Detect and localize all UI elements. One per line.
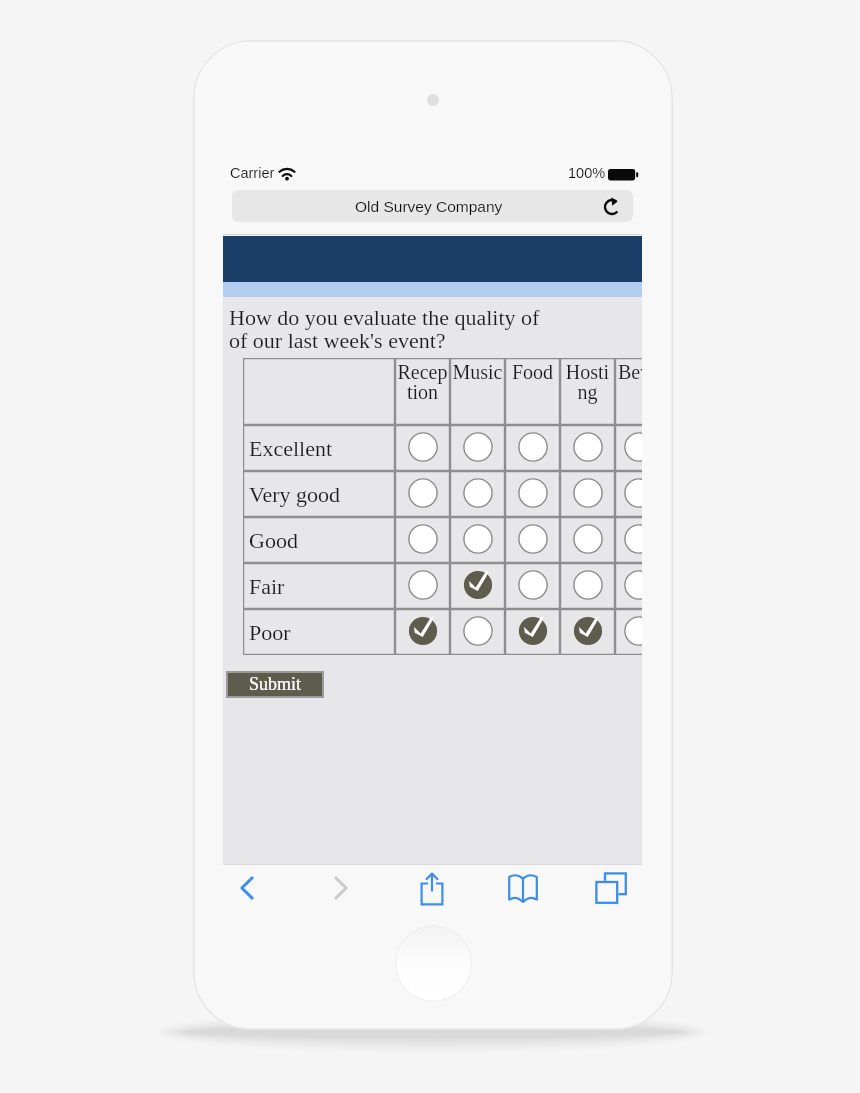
button[interactable]: Share [406, 864, 458, 911]
button[interactable]: Good - Reception [395, 517, 450, 563]
button[interactable]: Excellent - Beverage [615, 425, 642, 471]
button[interactable]: Fair - Beverage [615, 563, 642, 609]
staticText: Hosti ng [560, 361, 615, 404]
button[interactable]: Poor - Food [505, 609, 560, 655]
button[interactable]: Bookmarks [497, 864, 549, 911]
staticText: Food [505, 361, 560, 383]
button[interactable]: Fair - Food [505, 563, 560, 609]
button[interactable]: Poor - Reception [395, 609, 450, 655]
button[interactable]: Good - Hosting [560, 517, 615, 563]
button[interactable]: Excellent - Music [450, 425, 505, 471]
button[interactable]: Very good - Food [505, 471, 560, 517]
button[interactable]: Good - Food [505, 517, 560, 563]
staticText: Music [450, 361, 505, 383]
button[interactable]: Excellent - Hosting [560, 425, 615, 471]
button[interactable]: Very good - Hosting [560, 471, 615, 517]
button[interactable]: Fair - Music [450, 563, 505, 609]
staticText: Very good [249, 482, 341, 506]
button[interactable]: Forward [315, 864, 367, 911]
button[interactable]: Poor - Beverage [615, 609, 642, 655]
staticText: 100% [568, 165, 606, 181]
button[interactable]: Poor - Hosting [560, 609, 615, 655]
button[interactable]: Good - Music [450, 517, 505, 563]
button[interactable]: Back [221, 864, 273, 911]
staticText: Fair [249, 574, 285, 598]
button[interactable]: Very good - Music [450, 471, 505, 517]
button[interactable]: Poor - Music [450, 609, 505, 655]
button[interactable]: Very good - Beverage [615, 471, 642, 517]
button[interactable]: Excellent - Reception [395, 425, 450, 471]
staticText: Poor [249, 620, 291, 644]
staticText: Carrier [230, 165, 275, 181]
button[interactable]: Tabs [585, 864, 637, 911]
button[interactable]: Good - Beverage [615, 517, 642, 563]
staticText: Old Survey Company [355, 198, 503, 215]
button[interactable]: Reload [600, 194, 624, 218]
staticText: Recep tion [395, 361, 450, 404]
staticText: Excellent [249, 436, 333, 460]
button[interactable]: Excellent - Food [505, 425, 560, 471]
staticText: Submit [249, 674, 302, 694]
button[interactable]: Very good - Reception [395, 471, 450, 517]
staticText: Good [249, 528, 298, 552]
staticText: How do you evaluate the quality of of ou… [229, 305, 540, 352]
button[interactable]: Fair - Hosting [560, 563, 615, 609]
button[interactable]: Fair - Reception [395, 563, 450, 609]
button[interactable]: Submit [228, 673, 322, 696]
staticText: Beve [615, 361, 642, 383]
button[interactable]: Home [395, 925, 472, 1002]
button[interactable]: Old Survey Company [232, 190, 633, 222]
